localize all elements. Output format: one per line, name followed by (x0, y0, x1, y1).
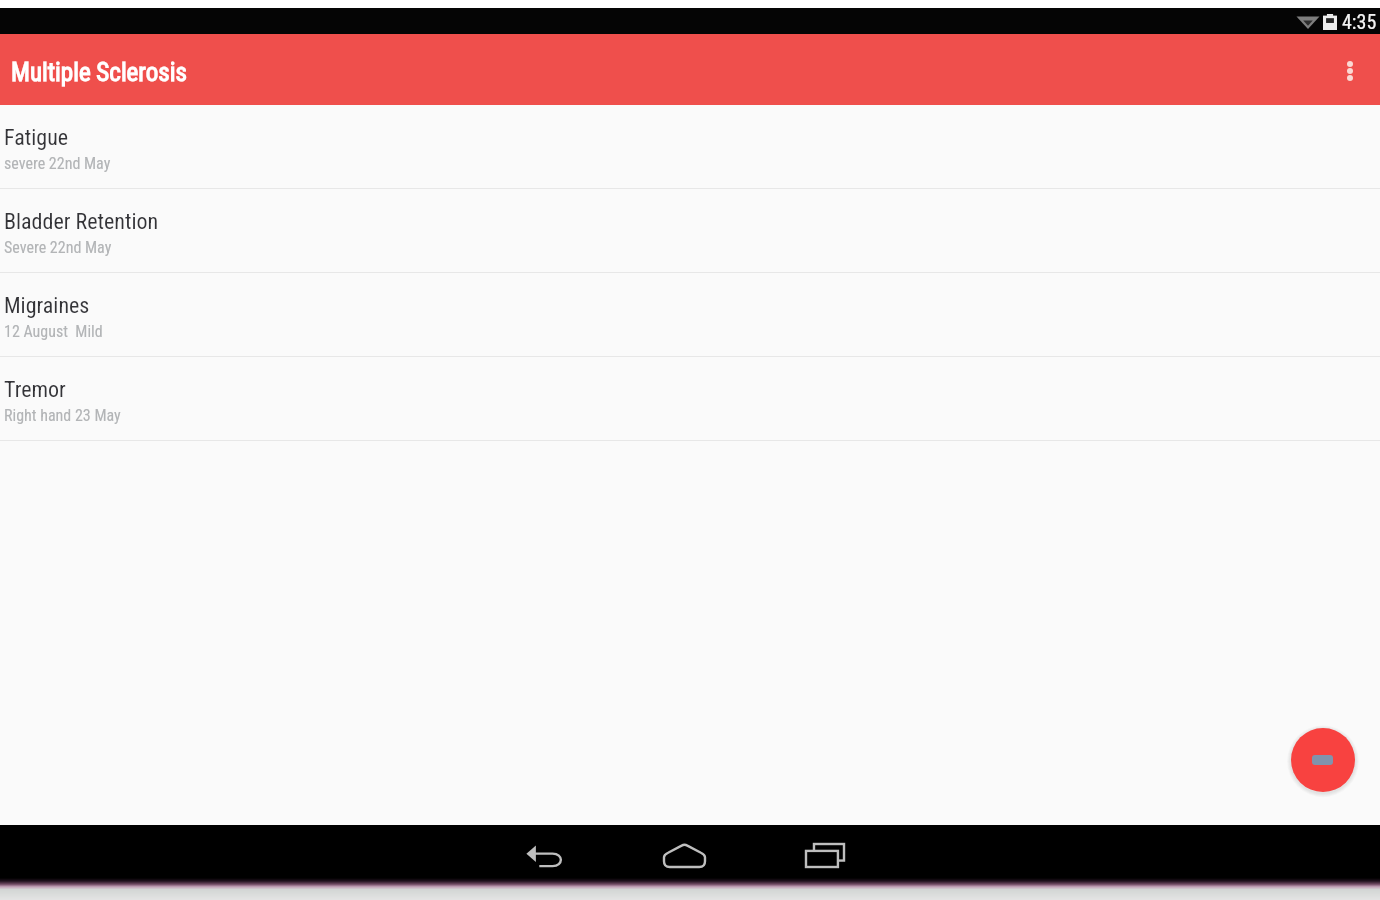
button[interactable]: More options (1322, 34, 1378, 105)
button[interactable]: Bladder Retention (0, 189, 1380, 273)
button[interactable]: Recent apps (785, 825, 865, 878)
button[interactable]: Fatigue (0, 105, 1380, 189)
staticText: severe 22nd May (4, 154, 111, 173)
button[interactable]: Add symptom (1291, 728, 1355, 792)
button[interactable]: Back (505, 825, 585, 878)
staticText: Bladder Retention (4, 209, 159, 235)
staticText: Multiple Sclerosis (11, 58, 187, 87)
button[interactable]: Migraines (0, 273, 1380, 357)
staticText: Right hand 23 May (4, 406, 121, 425)
staticText: Severe 22nd May (4, 238, 112, 257)
staticText: Migraines (4, 293, 90, 319)
button[interactable]: Home (644, 825, 724, 878)
staticText: Tremor (4, 377, 66, 403)
staticText: Fatigue (4, 125, 69, 151)
button[interactable]: Tremor (0, 357, 1380, 441)
staticText: 12 August Mild (4, 322, 103, 341)
staticText: 4:35 (1342, 10, 1377, 33)
